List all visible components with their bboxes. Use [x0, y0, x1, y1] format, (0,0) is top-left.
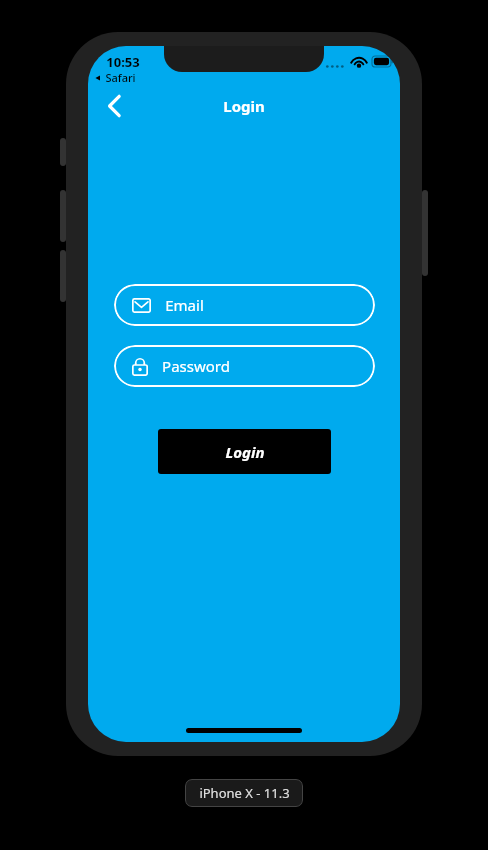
staticText: Login: [223, 96, 265, 116]
button[interactable]: Back: [92, 88, 136, 124]
staticText: 10:53: [106, 53, 140, 71]
button[interactable]: Email: [114, 284, 375, 326]
staticText: Email: [165, 295, 204, 315]
staticText: Login: [225, 442, 265, 462]
staticText: Password: [162, 356, 230, 376]
button[interactable]: Password: [114, 345, 375, 387]
button[interactable]: Login: [158, 429, 331, 474]
staticText: Safari: [105, 70, 136, 85]
staticText: iPhone X - 11.3: [199, 784, 290, 802]
